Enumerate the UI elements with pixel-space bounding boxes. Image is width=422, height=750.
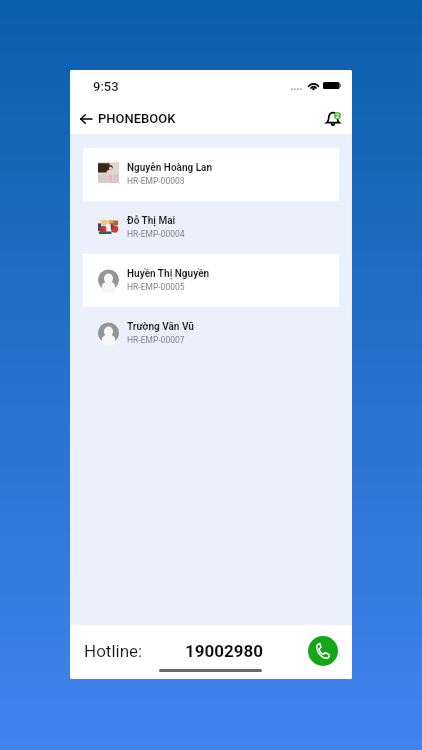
button[interactable]: Trường Văn Vũ: [83, 307, 339, 360]
staticText: HR-EMP-00003: [127, 176, 185, 186]
staticText: 19002980: [185, 641, 264, 661]
staticText: Trường Văn Vũ: [127, 321, 194, 333]
staticText: Hotline:: [84, 641, 143, 661]
staticText: 9:53: [93, 79, 119, 94]
button[interactable]: Call hotline: [308, 636, 338, 666]
button[interactable]: Nguyễn Hoàng Lan: [83, 148, 339, 201]
button[interactable]: Back: [75, 108, 97, 130]
staticText: PHONEBOOK: [98, 111, 176, 126]
staticText: HR-EMP-00007: [127, 335, 185, 345]
button[interactable]: Notifications: [321, 107, 345, 131]
button[interactable]: Huyền Thị Nguyền: [83, 254, 339, 307]
button[interactable]: Đỗ Thị Mai: [83, 201, 339, 254]
staticText: Đỗ Thị Mai: [127, 215, 176, 227]
staticText: HR-EMP-00004: [127, 229, 185, 239]
staticText: Nguyễn Hoàng Lan: [127, 162, 213, 174]
staticText: Huyền Thị Nguyền: [127, 268, 210, 280]
staticText: HR-EMP-00005: [127, 282, 185, 292]
